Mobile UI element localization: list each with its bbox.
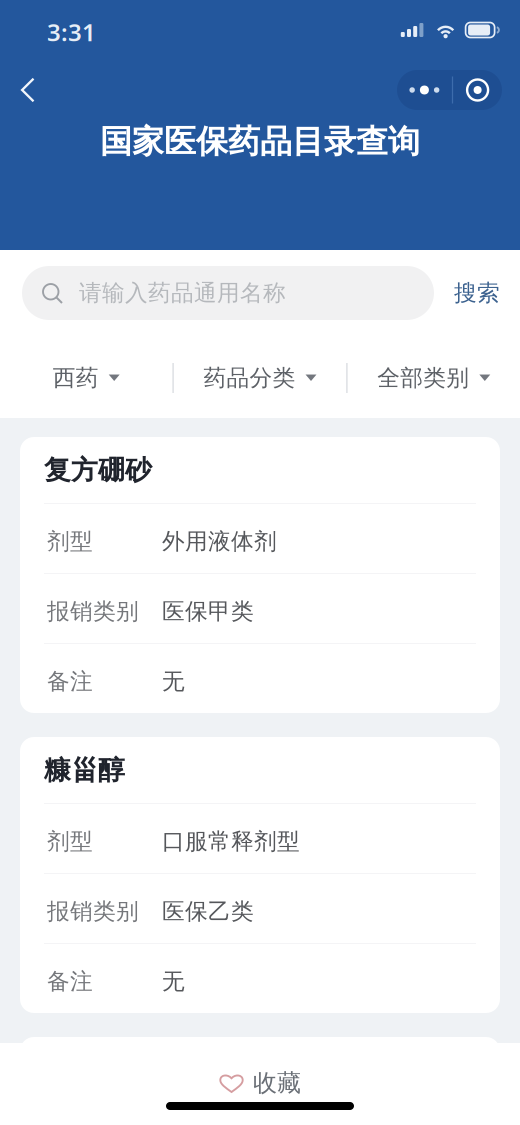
staticText: 无 — [162, 968, 185, 995]
button[interactable]: Back — [5, 68, 51, 112]
button[interactable]: 复方硼砂 — [20, 437, 500, 713]
staticText: 报销类别 — [47, 598, 139, 625]
staticText: 备注 — [47, 968, 93, 995]
staticText: 收藏 — [253, 1068, 301, 1098]
staticText: 外用液体剂 — [162, 528, 277, 555]
staticText: 搜索 — [454, 279, 500, 307]
staticText: 医保乙类 — [162, 898, 254, 925]
button[interactable]: More — [397, 70, 452, 110]
staticText: 无 — [162, 668, 185, 695]
button[interactable]: 糠甾醇 — [20, 737, 500, 1013]
staticText: 剂型 — [47, 528, 93, 555]
button[interactable]: 药品分类 — [174, 349, 346, 407]
staticText: 国家医保药品目录查询 — [100, 122, 420, 161]
staticText: 3:31 — [47, 16, 96, 48]
staticText: 报销类别 — [47, 898, 139, 925]
button[interactable]: 盐酸安非他酮 — [20, 1037, 500, 1125]
staticText: 口服常释剂型 — [162, 828, 300, 855]
staticText: 糠甾醇 — [44, 754, 125, 786]
staticText: 请输入药品通用名称 — [79, 279, 286, 307]
button[interactable]: 全部类别 — [348, 349, 520, 407]
button[interactable]: 西药 — [0, 349, 172, 407]
button[interactable]: 收藏 — [0, 1057, 520, 1109]
staticText: 药品分类 — [203, 364, 295, 392]
staticText: 复方硼砂 — [44, 454, 152, 486]
button[interactable]: 搜索 — [434, 266, 520, 320]
staticText: 西药 — [53, 364, 99, 392]
staticText: 医保甲类 — [162, 598, 254, 625]
staticText: 备注 — [47, 668, 93, 695]
staticText: 剂型 — [47, 828, 93, 855]
button[interactable]: Close — [453, 70, 502, 110]
staticText: 全部类别 — [377, 364, 469, 392]
